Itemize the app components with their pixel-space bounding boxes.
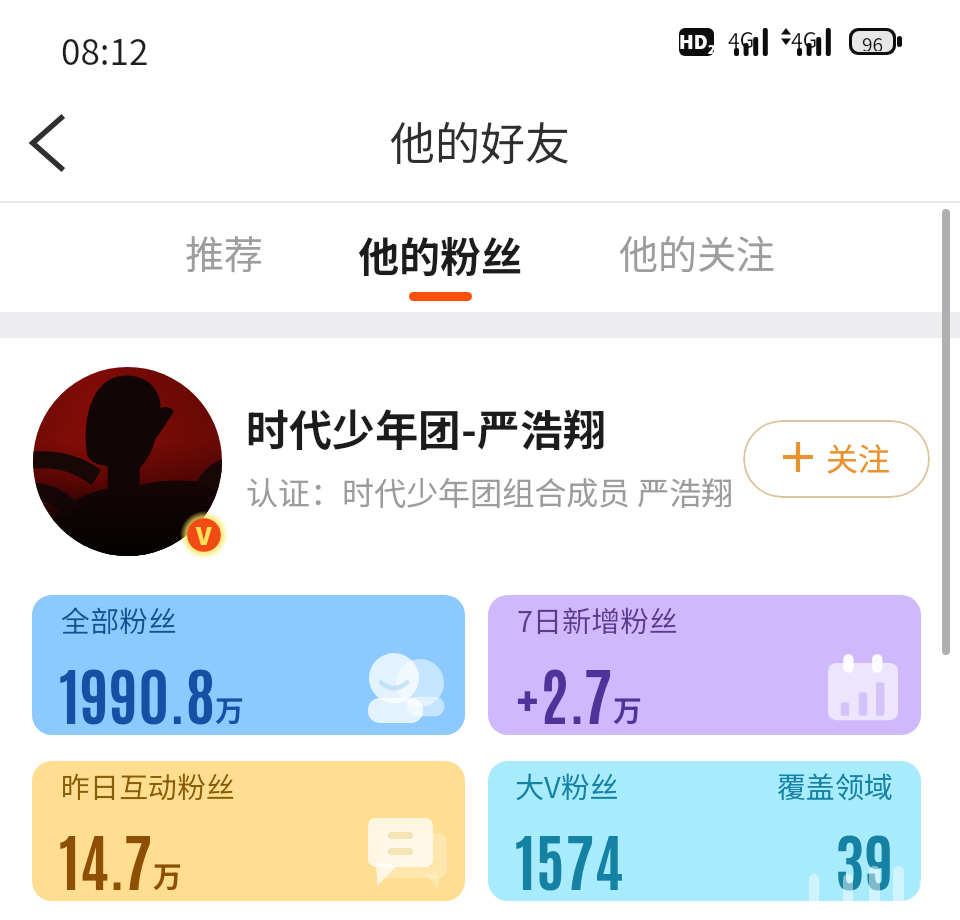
staticText: 96 (862, 31, 884, 51)
staticText: 万 (613, 687, 643, 729)
staticText: +2.7 (515, 651, 613, 733)
button[interactable]: 他的关注 (597, 210, 797, 305)
staticText: 时代少年团-严浩翔 (246, 396, 606, 458)
staticText: 昨日互动粉丝 (61, 764, 236, 806)
staticText: 推荐 (185, 224, 264, 280)
staticText: 14.7 (59, 817, 153, 899)
button[interactable]: 推荐 (164, 210, 284, 305)
button[interactable]: 关注 (743, 420, 930, 498)
staticText: HD (679, 28, 708, 55)
staticText: 大V粉丝 (515, 764, 619, 806)
button[interactable]: 全部粉丝 (32, 595, 465, 735)
staticText: V (196, 517, 212, 552)
button[interactable]: 大V粉丝 (488, 761, 921, 901)
button[interactable]: 昨日互动粉丝 (32, 761, 465, 901)
staticText: 4G (791, 24, 818, 54)
staticText: 08:12 (61, 24, 149, 75)
staticText: 7日新增粉丝 (517, 598, 679, 640)
staticText: 他的关注 (619, 224, 776, 280)
staticText: 39 (835, 817, 894, 899)
staticText: 万 (153, 853, 183, 895)
staticText: 关注 (826, 434, 891, 480)
button[interactable]: Back (0, 100, 94, 186)
staticText: 认证：时代少年团组合成员 严浩翔 (246, 468, 734, 514)
staticText: 覆盖领域 (777, 764, 894, 806)
button[interactable]: 7日新增粉丝 (488, 595, 921, 735)
button[interactable] (33, 367, 222, 556)
staticText: 4G (728, 24, 755, 54)
staticText: 1990.8 (59, 651, 215, 733)
staticText: 全部粉丝 (61, 598, 178, 640)
button[interactable]: 他的粉丝 (340, 210, 540, 305)
staticText: 2 (708, 40, 714, 56)
staticText: 他的粉丝 (358, 224, 522, 283)
staticText: 万 (215, 687, 245, 729)
staticText: 1574 (515, 817, 624, 899)
staticText: 他的好友 (390, 108, 571, 173)
